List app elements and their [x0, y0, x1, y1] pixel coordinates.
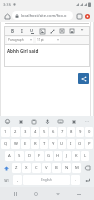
staticText: !#1 [4, 178, 10, 183]
staticText: P [88, 141, 91, 147]
button[interactable]: U [58, 139, 66, 149]
button[interactable]: B [8, 27, 16, 35]
button[interactable]: K [72, 151, 80, 161]
button[interactable]: Image [38, 27, 46, 35]
button[interactable]: Paragraph [7, 37, 33, 43]
button[interactable]: R [31, 139, 39, 149]
staticText: 4 [34, 129, 37, 135]
staticText: U [60, 141, 64, 147]
button[interactable]: Settings [69, 117, 78, 126]
button[interactable]: Q [1, 139, 10, 149]
button[interactable]: Tabs [75, 12, 83, 20]
button[interactable]: B [52, 163, 61, 173]
staticText: X [25, 165, 28, 171]
staticText: Abhh Girl said [7, 48, 39, 54]
button[interactable]: Keyboard dismiss [73, 188, 85, 200]
staticText: D [28, 153, 32, 159]
button[interactable]: Copy [58, 27, 66, 35]
button[interactable]: E [21, 139, 30, 149]
button[interactable]: Italic [18, 27, 26, 35]
button[interactable]: P [85, 139, 93, 149]
button[interactable]: H [54, 151, 62, 161]
button[interactable]: Y [49, 139, 57, 149]
button[interactable]: 11pt [36, 37, 60, 43]
button[interactable]: 3 [21, 127, 30, 137]
button[interactable]: 7 [58, 127, 66, 137]
staticText: W [14, 141, 18, 147]
staticText: G [47, 153, 51, 159]
button[interactable]: 6 [49, 127, 57, 137]
button[interactable]: X [22, 163, 31, 173]
staticText: I [21, 28, 23, 34]
button[interactable]: L [81, 151, 89, 161]
staticText: T [43, 141, 46, 147]
button[interactable]: 9 [76, 127, 84, 137]
button[interactable]: 5 [40, 127, 48, 137]
button[interactable]: localhost/site.com/foo.o [12, 11, 73, 20]
staticText: 5 [43, 129, 46, 135]
button[interactable]: Switch language [1, 175, 12, 185]
button[interactable]: 4 [31, 127, 39, 137]
button[interactable]: W [11, 139, 20, 149]
button[interactable]: N [62, 163, 71, 173]
button[interactable]: Underline [28, 27, 36, 35]
button[interactable]: G [45, 151, 53, 161]
staticText: 9 [79, 129, 82, 135]
button[interactable]: Recents [9, 188, 21, 200]
button[interactable]: I [67, 139, 75, 149]
button[interactable]: Z [12, 163, 21, 173]
button[interactable]: Emoji [3, 117, 12, 126]
staticText: B [55, 165, 58, 171]
button[interactable]: O [76, 139, 84, 149]
button[interactable]: F [35, 151, 44, 161]
button[interactable]: Keyboard [56, 117, 65, 126]
button[interactable]: 2 [11, 127, 20, 137]
button[interactable]: M [72, 163, 81, 173]
staticText: ⋯ [85, 119, 89, 124]
button[interactable]: English [23, 175, 70, 185]
staticText: K [75, 153, 78, 159]
staticText: 2 [14, 129, 17, 135]
button[interactable]: A [5, 151, 14, 161]
button[interactable]: T [40, 139, 48, 149]
button[interactable]: Voice input [43, 117, 52, 126]
staticText: A [8, 153, 11, 159]
button[interactable]: Quote [78, 27, 86, 35]
button[interactable]: 8 [67, 127, 75, 137]
button[interactable]: Menu [83, 12, 91, 20]
staticText: , [17, 177, 19, 183]
button[interactable]: . [71, 175, 80, 185]
staticText: U [30, 28, 34, 33]
staticText: 6 [52, 129, 55, 135]
button[interactable]: Enter [81, 175, 93, 185]
button[interactable]: Backspace [82, 163, 93, 173]
button[interactable]: Link [48, 27, 56, 35]
button[interactable]: , [13, 175, 22, 185]
button[interactable]: GIF [16, 117, 25, 126]
button[interactable]: Home [30, 188, 42, 200]
staticText: E [24, 141, 27, 147]
staticText: 7 [61, 129, 64, 135]
staticText: localhost/site.com/foo.o [21, 13, 67, 18]
staticText: L [84, 153, 87, 159]
button[interactable]: 0 [85, 127, 93, 137]
button[interactable]: V [42, 163, 51, 173]
staticText: 3 [24, 129, 27, 135]
staticText: Paragraph [8, 38, 24, 42]
staticText: B [11, 28, 14, 34]
button[interactable]: Shift [1, 163, 11, 173]
staticText: V [45, 165, 48, 171]
button[interactable]: D [25, 151, 34, 161]
button[interactable]: Share [78, 73, 89, 84]
button[interactable]: C [32, 163, 41, 173]
button[interactable]: 1 [1, 127, 10, 137]
button[interactable]: Clipboard [29, 117, 38, 126]
staticText: M [75, 165, 79, 171]
button[interactable]: Back [52, 188, 64, 200]
button[interactable]: S [15, 151, 24, 161]
button[interactable]: Home [3, 12, 11, 20]
button[interactable]: J [63, 151, 71, 161]
button[interactable]: Save [68, 27, 76, 35]
staticText: Y [52, 141, 55, 147]
button[interactable]: More [82, 117, 91, 126]
